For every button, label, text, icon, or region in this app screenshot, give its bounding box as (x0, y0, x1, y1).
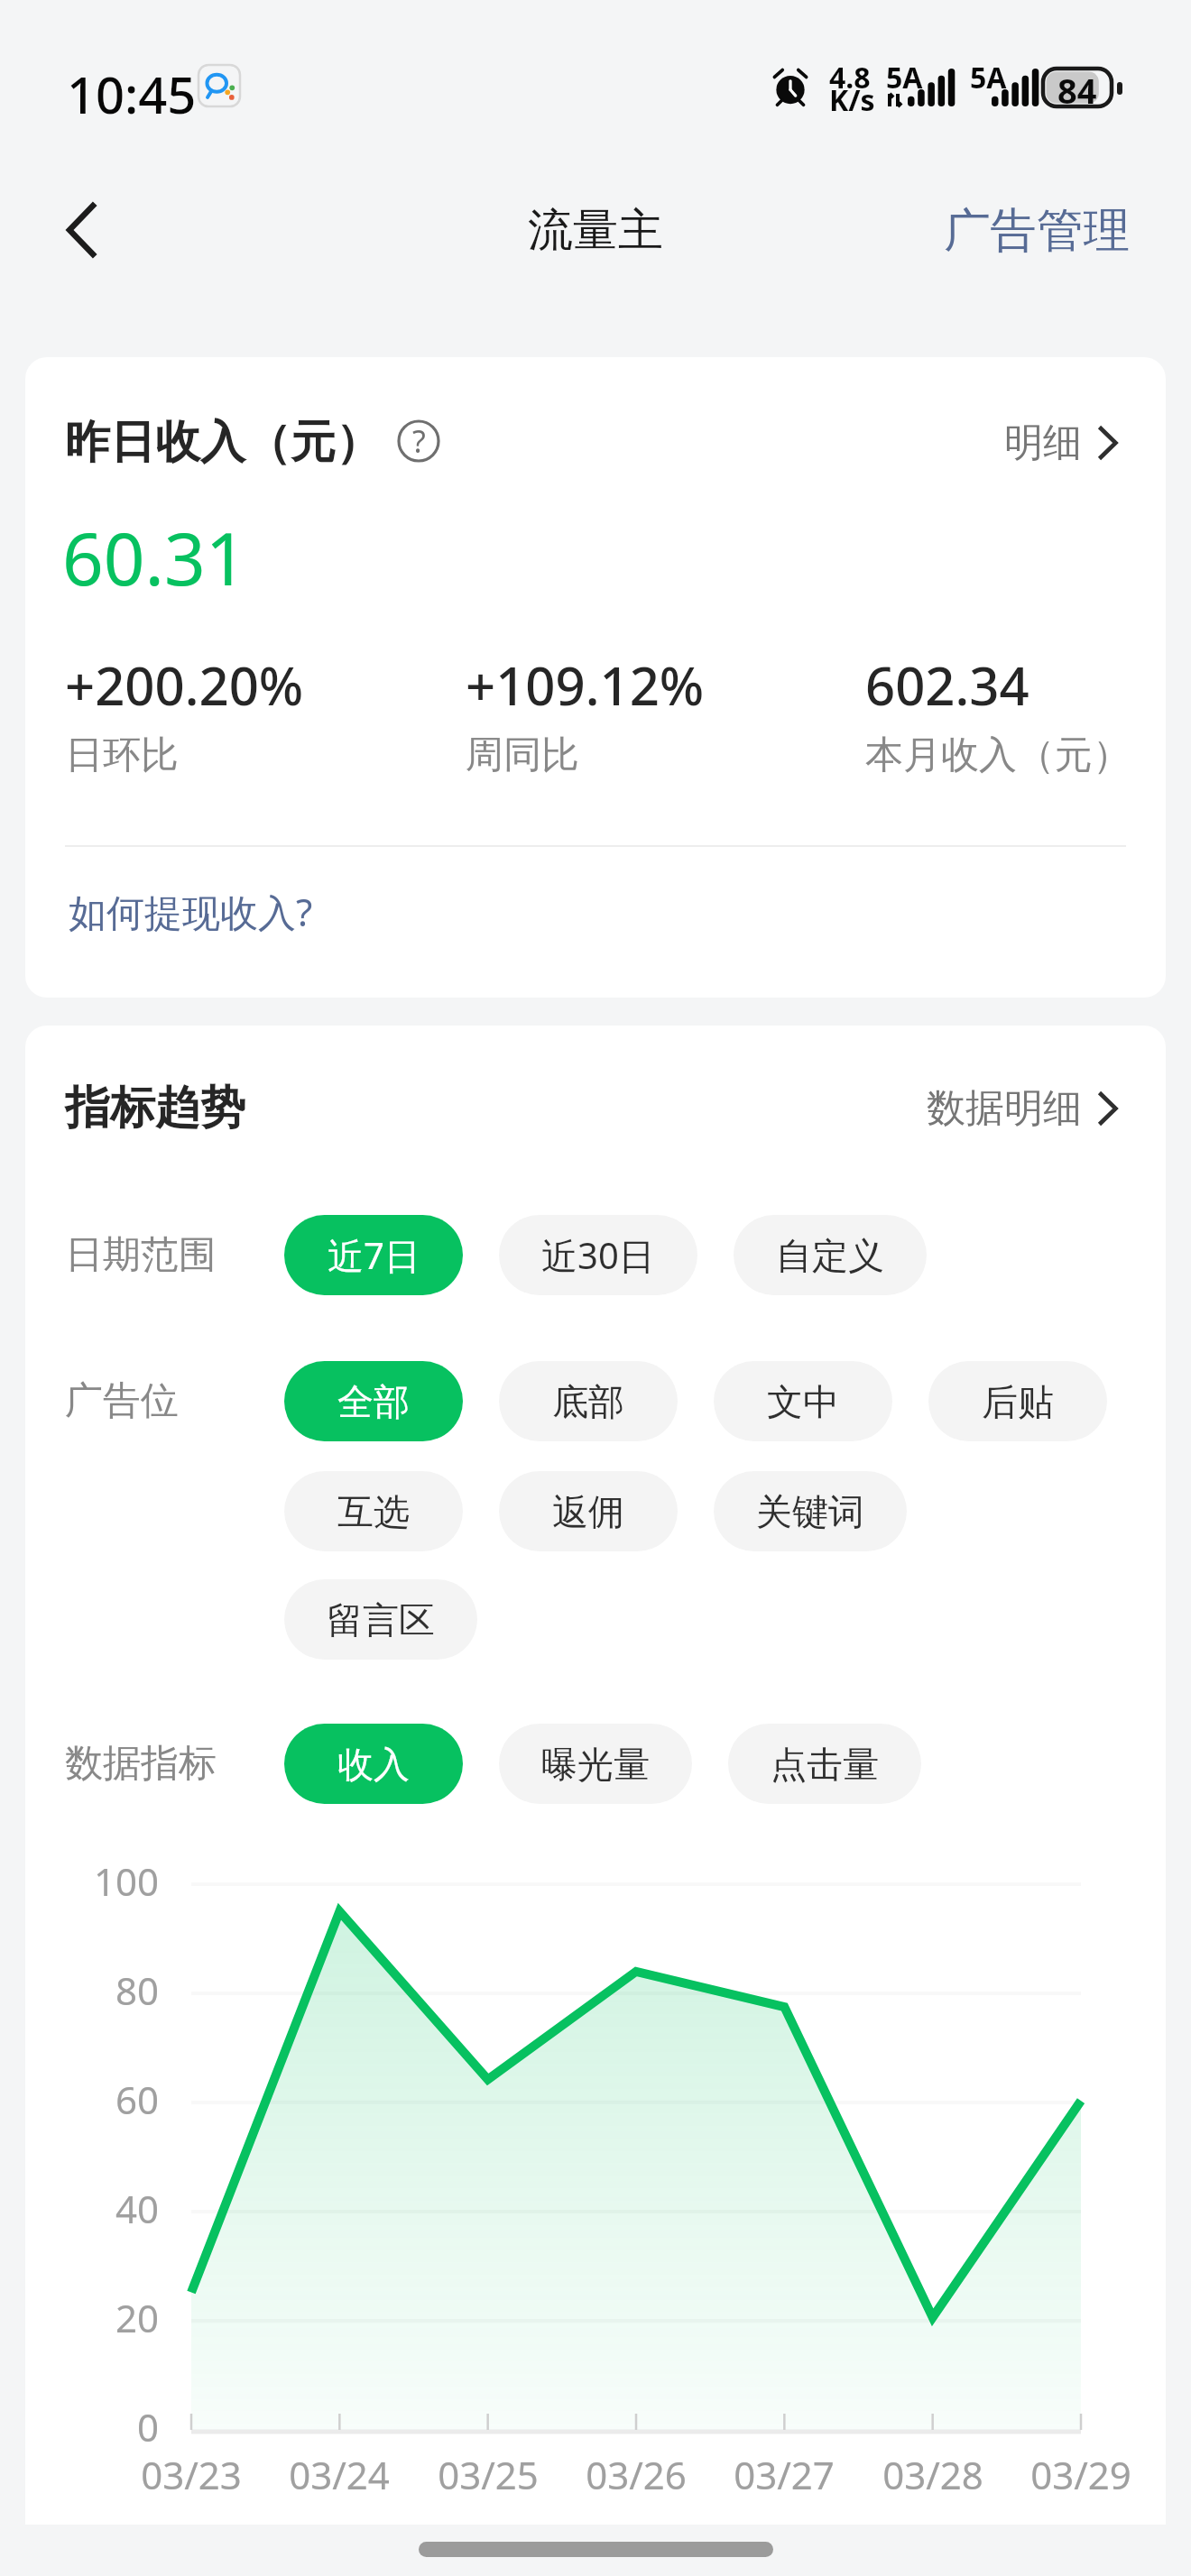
staticText: 03/29 (1030, 2449, 1131, 2500)
staticText: ? (412, 420, 426, 462)
staticText: 03/23 (141, 2449, 242, 2500)
staticText: +109.12% (466, 649, 705, 721)
staticText: 602.34 (865, 649, 1029, 721)
staticText: 如何提现收入? (69, 886, 313, 937)
staticText: 近30日 (541, 1230, 655, 1280)
staticText: 03/28 (882, 2449, 983, 2500)
staticText: 5A (886, 58, 923, 97)
staticText: 后贴 (982, 1379, 1054, 1424)
button[interactable]: 后贴 (928, 1361, 1107, 1441)
staticText: 近7日 (328, 1230, 420, 1280)
button[interactable]: 数据明细 (927, 1084, 1118, 1133)
staticText: 60 (115, 2074, 159, 2125)
staticText: 本月收入（元） (865, 731, 1131, 779)
staticText: 03/26 (586, 2449, 687, 2500)
staticText: 返佣 (552, 1489, 624, 1534)
button[interactable]: 关键词 (714, 1471, 907, 1551)
staticText: 数据指标 (65, 1740, 217, 1788)
staticText: 03/27 (734, 2449, 835, 2500)
staticText: 互选 (337, 1489, 410, 1534)
button[interactable]: 近7日 (284, 1215, 463, 1295)
staticText: +200.20% (65, 649, 304, 721)
staticText: 底部 (552, 1379, 624, 1424)
button[interactable]: 明细 (1004, 419, 1118, 467)
staticText: 10:45 (67, 60, 197, 128)
staticText: 84 (1057, 67, 1097, 108)
staticText: 5A (970, 58, 1007, 97)
button[interactable]: Back (45, 194, 117, 266)
button[interactable]: 广告管理 (938, 196, 1135, 265)
staticText: 03/25 (438, 2449, 539, 2500)
staticText: 日环比 (65, 731, 179, 779)
button[interactable]: 曝光量 (499, 1724, 692, 1804)
button[interactable]: 留言区 (284, 1579, 477, 1660)
staticText: 点击量 (771, 1742, 879, 1787)
button[interactable]: 如何提现收入? (65, 882, 317, 941)
button[interactable]: 互选 (284, 1471, 463, 1551)
staticText: 明细 (1004, 419, 1082, 467)
staticText: 数据明细 (927, 1084, 1082, 1133)
staticText: 周同比 (466, 731, 579, 779)
button[interactable]: 自定义 (734, 1215, 927, 1295)
button[interactable]: 底部 (499, 1361, 678, 1441)
button[interactable]: 文中 (714, 1361, 892, 1441)
staticText: 0 (136, 2401, 159, 2452)
staticText: K/s (829, 80, 875, 120)
button[interactable]: Help (393, 416, 444, 466)
staticText: 4.8 (829, 58, 871, 97)
staticText: 广告管理 (944, 201, 1130, 260)
staticText: 20 (115, 2292, 159, 2343)
staticText: 03/24 (289, 2449, 390, 2500)
staticText: 全部 (337, 1379, 410, 1424)
staticText: 文中 (767, 1379, 839, 1424)
button[interactable]: 返佣 (499, 1471, 678, 1551)
staticText: 80 (115, 1964, 159, 2016)
staticText: 流量主 (528, 202, 663, 259)
staticText: 40 (115, 2183, 159, 2234)
staticText: 指标趋势 (65, 1080, 245, 1136)
staticText: 关键词 (756, 1489, 864, 1534)
button[interactable]: 收入 (284, 1724, 463, 1804)
staticText: 日期范围 (65, 1231, 217, 1279)
staticText: 自定义 (776, 1233, 884, 1278)
button[interactable]: 全部 (284, 1361, 463, 1441)
staticText: 收入 (337, 1742, 410, 1787)
staticText: 广告位 (65, 1377, 179, 1425)
button[interactable]: 近30日 (499, 1215, 697, 1295)
staticText: 曝光量 (541, 1742, 650, 1787)
staticText: 60.31 (62, 508, 247, 606)
staticText: 100 (93, 1855, 159, 1907)
staticText: 留言区 (327, 1597, 435, 1642)
button[interactable]: 点击量 (728, 1724, 921, 1804)
staticText: 昨日收入（元） (65, 414, 381, 471)
